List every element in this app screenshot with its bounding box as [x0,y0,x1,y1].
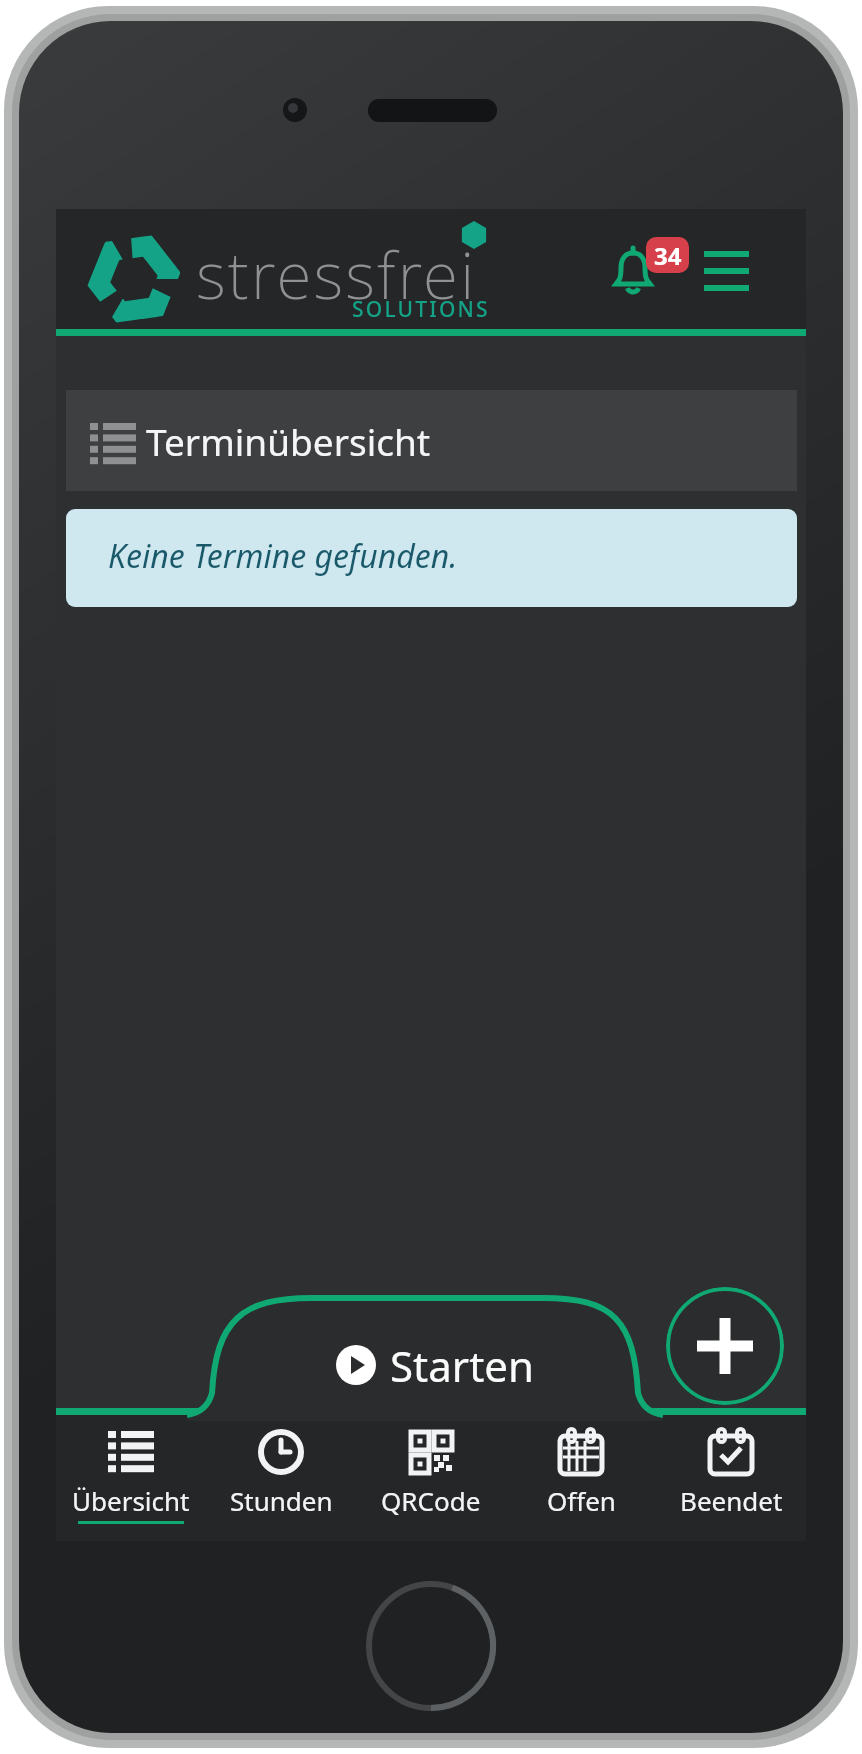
button[interactable]: QRCode [356,1429,506,1539]
staticText: Übersicht [72,1483,190,1518]
staticText: stressfrei [196,231,477,318]
button[interactable]: Terminübersicht [66,390,797,491]
staticText: 34 [654,239,682,272]
staticText: Terminübersicht [146,416,431,466]
button[interactable] [666,1287,784,1405]
button[interactable]: Starten [221,1312,649,1418]
button[interactable] [701,245,753,301]
button[interactable]: Keine Termine gefunden. [66,509,797,607]
button[interactable] [606,244,662,300]
staticText: QRCode [381,1483,481,1518]
button[interactable]: Beendet [656,1429,806,1539]
staticText: Offen [547,1483,616,1518]
staticText: SOLUTIONS [352,295,490,324]
staticText: Keine Termine gefunden. [108,534,458,578]
button[interactable]: Übersicht [56,1429,206,1539]
button[interactable]: Offen [506,1429,656,1539]
staticText: Beendet [680,1483,783,1518]
staticText: Stunden [230,1483,333,1518]
button[interactable]: Stunden [206,1429,356,1539]
staticText: Starten [390,1337,534,1394]
